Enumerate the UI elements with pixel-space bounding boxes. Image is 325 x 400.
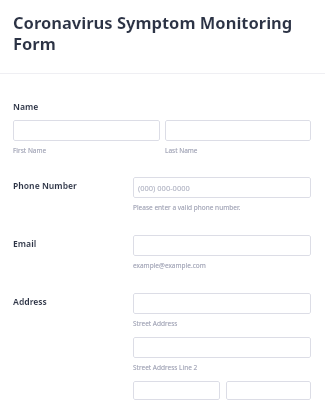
button[interactable] [133,235,311,256]
button[interactable]: (000) 000-0000 [133,177,311,198]
staticText: Address [13,296,47,308]
staticText: (000) 000-0000 [138,183,190,193]
staticText: Please enter a valid phone number. [133,203,241,212]
button[interactable] [133,337,311,358]
staticText: example@example.com [133,261,206,270]
button[interactable] [133,381,220,400]
button[interactable] [133,293,311,314]
staticText: Last Name [165,146,198,155]
button[interactable] [13,120,160,141]
staticText: Street Address Line 2 [133,363,198,372]
staticText: First Name [13,146,47,155]
staticText: Name [13,101,39,113]
staticText: Coronavirus Symptom Monitoring Form [13,11,312,55]
button[interactable] [165,120,311,141]
staticText: Street Address [133,319,178,328]
button[interactable] [226,381,311,400]
staticText: Email [13,238,37,250]
staticText: Phone Number [13,180,77,192]
